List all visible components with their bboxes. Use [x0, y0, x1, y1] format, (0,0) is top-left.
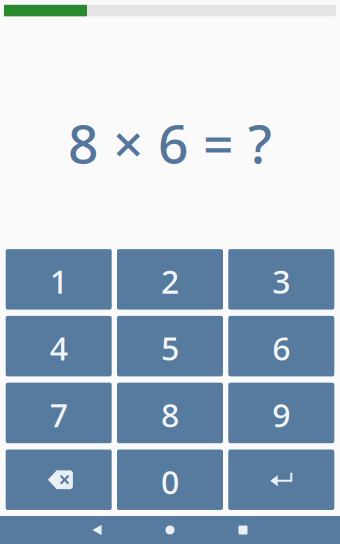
- button[interactable]: 3: [228, 249, 334, 310]
- staticText: 7: [50, 394, 68, 436]
- staticText: 6: [272, 327, 290, 369]
- button[interactable]: Delete: [6, 449, 112, 510]
- staticText: 9: [272, 394, 290, 436]
- button[interactable]: 4: [6, 316, 112, 376]
- staticText: 5: [161, 327, 179, 369]
- button[interactable]: 2: [117, 249, 223, 310]
- button[interactable]: Recents: [222, 516, 264, 544]
- staticText: 3: [272, 260, 290, 303]
- button[interactable]: Home: [149, 516, 191, 544]
- button[interactable]: 7: [6, 383, 112, 443]
- staticText: 4: [50, 327, 68, 369]
- button[interactable]: 8: [117, 383, 223, 443]
- staticText: 0: [161, 460, 179, 503]
- staticText: 8 × 6 = ?: [68, 107, 272, 178]
- button[interactable]: 0: [117, 449, 223, 510]
- button[interactable]: 1: [6, 249, 112, 310]
- staticText: 8: [161, 394, 179, 436]
- button[interactable]: 6: [228, 316, 334, 376]
- button[interactable]: 9: [228, 383, 334, 443]
- staticText: 1: [50, 260, 68, 303]
- button[interactable]: Enter: [228, 449, 334, 510]
- button[interactable]: Back: [76, 516, 118, 544]
- staticText: 2: [161, 260, 179, 303]
- button[interactable]: 5: [117, 316, 223, 376]
